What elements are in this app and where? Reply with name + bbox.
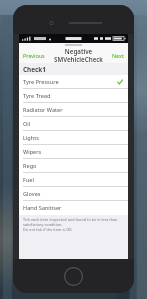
button[interactable]: Wipers [19,145,128,159]
staticText: Tyre Tread [23,92,51,100]
staticText: Rego [23,162,37,170]
staticText: Next [112,52,124,59]
staticText: Radiator Water [23,106,63,114]
button[interactable]: Tyre Pressure [19,75,128,89]
staticText: Wipers [23,148,42,156]
button[interactable]: Previous [22,50,46,61]
button[interactable]: Fuel [19,173,128,187]
button[interactable]: Gloves [19,187,128,201]
staticText: Hand Sanitiser [23,204,62,212]
staticText: Oil [23,120,31,128]
staticText: Tick each item inspected and found to be… [23,217,124,232]
staticText: Negative SMVehicleCheck [46,47,111,63]
button[interactable]: Next [111,50,125,61]
button[interactable]: Lights [19,131,128,145]
staticText: Gloves [23,190,41,198]
staticText: Fuel [23,176,34,184]
button[interactable]: Hand Sanitiser [19,201,128,215]
button[interactable]: Radiator Water [19,103,128,117]
button[interactable]: Rego [19,159,128,173]
button[interactable]: Oil [19,117,128,131]
staticText: Lights [23,134,39,142]
button[interactable]: Tyre Tread [19,89,128,103]
staticText: Check1 [23,65,46,74]
staticText: Previous [23,52,45,59]
staticText: Tyre Pressure [23,78,59,86]
